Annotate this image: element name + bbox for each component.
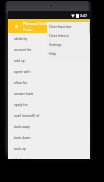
button[interactable]: Clear history [47,30,89,39]
staticText: back away [14,124,31,128]
button[interactable]: back away [8,121,90,132]
staticText: Clear favorites [49,24,72,28]
staticText: abide by [14,36,28,40]
staticText: back up [14,146,27,150]
staticText: avail (oneself) of [14,113,40,117]
staticText: back down [14,135,31,139]
staticText: 3:47 [80,13,88,18]
button[interactable]: Open navigation drawer [12,19,21,33]
button[interactable]: add up [8,55,90,66]
button[interactable]: back down [8,132,90,143]
staticText: black out [14,157,29,161]
button[interactable]: allow for [8,77,90,88]
button[interactable]: Clear favorites [47,21,89,30]
button[interactable]: answer back [8,88,90,99]
staticText: Phrasal Verbs [23,21,51,27]
staticText: Browse [23,28,33,32]
staticText: agree with [14,69,31,73]
staticText: Help [49,51,57,55]
staticText: Settings [49,42,62,46]
button[interactable]: abide by [8,33,90,44]
staticText: account for [14,47,32,51]
button[interactable]: avail (oneself) of [8,110,90,121]
staticText: Clear history [49,33,69,37]
staticText: answer back [14,91,34,95]
button[interactable]: black out [8,154,90,165]
staticText: allow for [14,80,28,84]
staticText: add up [14,58,25,62]
button[interactable]: apply for [8,99,90,110]
button[interactable]: agree with [8,66,90,77]
button[interactable]: back up [8,143,90,154]
button[interactable]: Help [47,48,89,57]
button[interactable]: Settings [47,39,89,48]
button[interactable]: account for [8,44,90,55]
staticText: apply for [14,102,28,106]
